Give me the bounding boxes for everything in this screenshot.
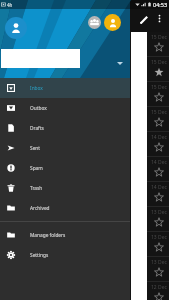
staticText: 14 Dec (151, 184, 167, 191)
button[interactable]: Trash (0, 178, 130, 198)
staticText: Manage folders (30, 232, 66, 239)
staticText: Trash (30, 185, 43, 192)
button[interactable]: 14 Dec (0, 182, 169, 207)
button[interactable]: 12 Dec (0, 282, 169, 300)
button[interactable]: Drafts (0, 118, 130, 138)
button[interactable]: 15 Dec (0, 57, 169, 82)
staticText: 04:53 (153, 1, 168, 8)
button[interactable]: Sent (0, 138, 130, 158)
button[interactable]: Expand account list (114, 57, 126, 69)
staticText: 14 Dec (151, 134, 167, 141)
button[interactable]: Settings (0, 245, 130, 265)
button[interactable]: 14 Dec (0, 132, 169, 157)
staticText: 15 Dec (151, 84, 167, 91)
button[interactable]: Compose (138, 14, 150, 26)
button[interactable]: Archived (0, 198, 130, 218)
button[interactable]: 15 Dec (0, 32, 169, 57)
staticText: 13 Dec (151, 209, 167, 216)
staticText: Settings (30, 252, 49, 259)
button[interactable]: Current account (5, 17, 27, 39)
button[interactable]: Other account (104, 14, 121, 31)
staticText: 15 Dec (151, 59, 167, 66)
button[interactable]: 13 Dec (0, 257, 169, 282)
staticText: Drafts (30, 125, 44, 132)
button[interactable]: All accounts (88, 16, 101, 29)
button[interactable]: 14 Dec (0, 157, 169, 182)
button[interactable]: 15 Dec (0, 82, 169, 107)
staticText: Archived (30, 205, 50, 212)
staticText: Sent (30, 145, 41, 152)
button[interactable]: 13 Dec (0, 232, 169, 257)
button[interactable]: Spam (0, 158, 130, 178)
staticText: Spam (30, 165, 43, 172)
button[interactable]: Outbox (0, 98, 130, 118)
staticText: 15 Dec (151, 109, 167, 116)
staticText: 4h (7, 2, 13, 8)
staticText: 15 Dec (151, 34, 167, 41)
staticText: 14 Dec (151, 159, 167, 166)
button[interactable]: 15 Dec (0, 107, 169, 132)
button[interactable]: Inbox (0, 78, 130, 98)
staticText: Outbox (30, 105, 47, 112)
staticText: 13 Dec (151, 259, 167, 266)
staticText: 12 Dec (151, 284, 167, 291)
button[interactable]: 13 Dec (0, 207, 169, 232)
button[interactable]: Manage folders (0, 225, 130, 245)
staticText: 13 Dec (151, 234, 167, 241)
staticText: Inbox (30, 85, 43, 92)
button[interactable]: More options (154, 13, 165, 24)
